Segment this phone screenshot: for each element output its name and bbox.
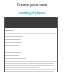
staticText: Sort by [5, 29, 14, 32]
button[interactable]: App bar [4, 17, 58, 28]
staticText: catalog of places [0, 10, 64, 15]
staticText: Create your own [0, 2, 64, 8]
